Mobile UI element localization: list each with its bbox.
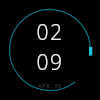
staticText: 02: [36, 18, 64, 47]
button[interactable]: Watch face: [0, 0, 100, 100]
staticText: APR. 30: [38, 83, 62, 90]
staticText: 09: [36, 48, 64, 77]
